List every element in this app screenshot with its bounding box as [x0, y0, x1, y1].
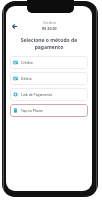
staticText: R$ 20.00 [42, 26, 57, 31]
staticText: Uns Itens [43, 21, 56, 25]
staticText: Link de Pagamento [21, 92, 53, 97]
button[interactable]: Débito [10, 72, 88, 85]
staticText: Tap on Phone [21, 108, 43, 113]
staticText: Débito [21, 76, 32, 81]
button[interactable]: Link de Pagamento [10, 88, 88, 101]
button[interactable]: Tap on Phone [10, 104, 88, 117]
button[interactable]: Back [9, 21, 20, 32]
staticText: Crédito [21, 60, 33, 65]
button[interactable]: Crédito [10, 56, 88, 69]
staticText: Selecione o método de pagamento [13, 37, 85, 50]
